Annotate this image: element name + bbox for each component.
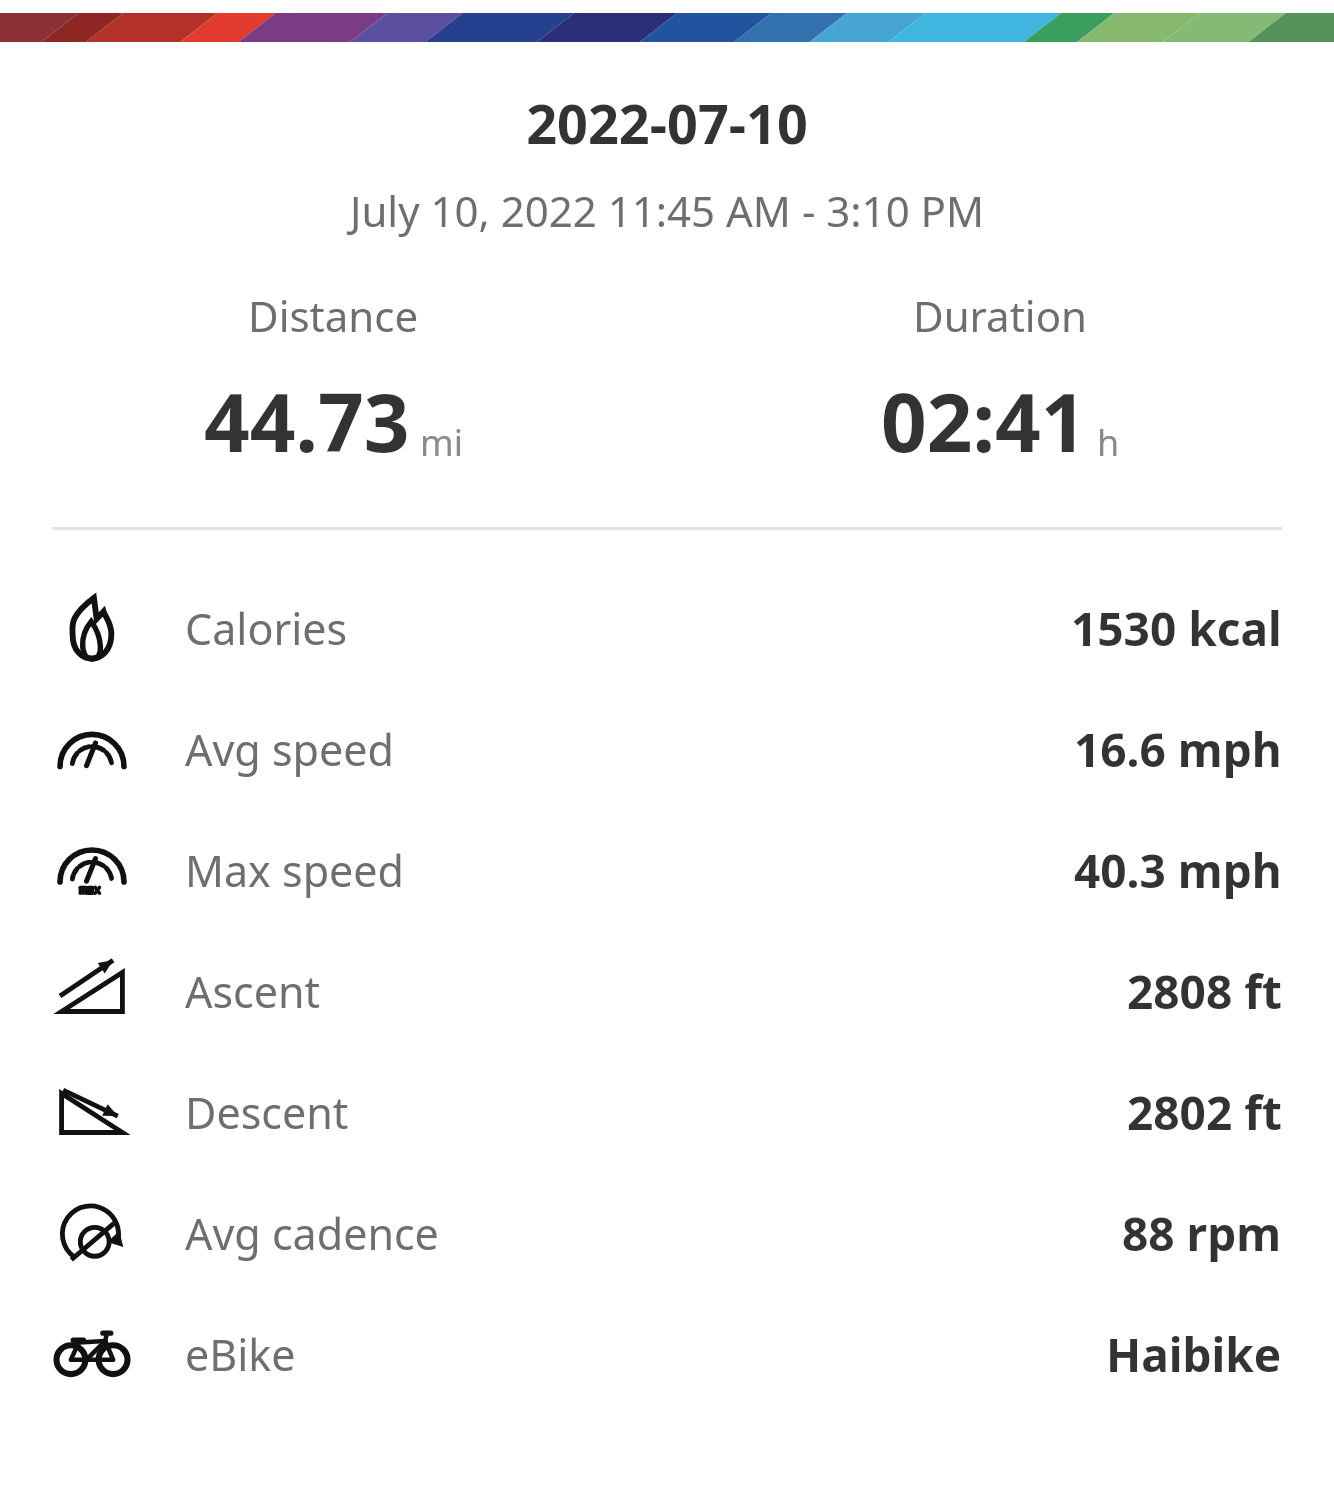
staticText: July 10, 2022 11:45 AM - 3:10 PM	[0, 182, 1334, 239]
other: Calories	[50, 587, 134, 671]
staticText: mi	[420, 418, 463, 467]
button[interactable]: Average speed	[0, 689, 1334, 810]
other: eBike	[50, 1313, 134, 1397]
button[interactable]: Duration	[667, 287, 1334, 475]
staticText: 16.6 mph	[1074, 718, 1282, 781]
button[interactable]: Average cadence	[0, 1173, 1334, 1294]
other: Descent	[50, 1071, 134, 1155]
staticText: Haibike	[1106, 1323, 1282, 1386]
button[interactable]: Descent	[0, 1052, 1334, 1173]
staticText: Avg speed	[185, 720, 394, 779]
other: Average speed	[50, 708, 134, 792]
other: Ascent	[50, 950, 134, 1034]
staticText: 2808 ft	[1127, 960, 1282, 1023]
staticText: h	[1097, 418, 1120, 467]
button[interactable]: Distance	[0, 287, 667, 475]
staticText: Distance	[248, 287, 419, 344]
staticText: Avg cadence	[185, 1204, 439, 1263]
staticText: 44.73	[204, 366, 410, 475]
staticText: Descent	[185, 1083, 349, 1142]
staticText: Duration	[913, 287, 1088, 344]
button[interactable]: Ascent	[0, 931, 1334, 1052]
staticText: eBike	[185, 1325, 296, 1384]
staticText: Calories	[185, 599, 348, 658]
other: Average cadence	[50, 1192, 134, 1276]
button[interactable]: Calories	[0, 568, 1334, 689]
staticText: 40.3 mph	[1074, 839, 1282, 902]
staticText: 2802 ft	[1127, 1081, 1282, 1144]
staticText: 02:41	[881, 366, 1087, 475]
staticText: Max speed	[185, 841, 405, 900]
other: Max speed	[50, 829, 134, 913]
button[interactable]: Max speed	[0, 810, 1334, 931]
button[interactable]: eBike	[0, 1294, 1334, 1415]
staticText: 2022-07-10	[0, 86, 1334, 160]
staticText: Ascent	[185, 962, 321, 1021]
staticText: 1530 kcal	[1071, 597, 1282, 660]
staticText: 88 rpm	[1122, 1202, 1282, 1265]
